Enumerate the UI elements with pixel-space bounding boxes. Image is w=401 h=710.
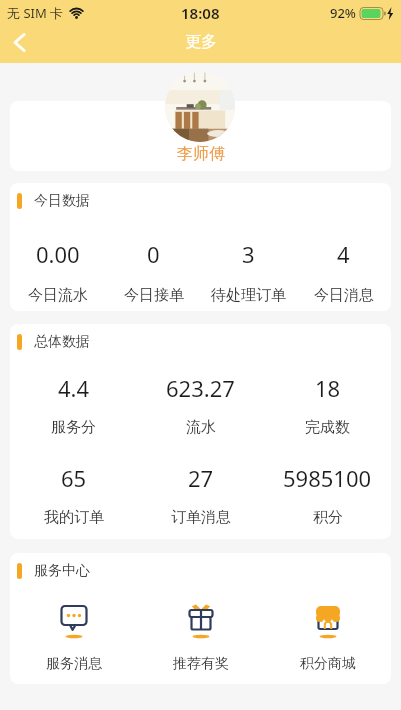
button[interactable]: 623.27 bbox=[137, 373, 264, 437]
staticText: 李师傅 bbox=[177, 144, 225, 164]
staticText: 0 bbox=[147, 239, 160, 269]
button[interactable]: 3 bbox=[201, 239, 296, 305]
staticText: 今日接单 bbox=[124, 286, 184, 305]
button[interactable]: 0.00 bbox=[10, 239, 106, 305]
staticText: 服务分 bbox=[51, 418, 96, 437]
staticText: 今日流水 bbox=[28, 286, 88, 305]
staticText: 4.4 bbox=[58, 373, 90, 403]
staticText: 更多 bbox=[185, 32, 217, 52]
staticText: 完成数 bbox=[305, 418, 350, 437]
button[interactable]: 服务消息 bbox=[10, 605, 137, 673]
staticText: 92% bbox=[330, 4, 356, 22]
staticText: 0.00 bbox=[36, 239, 80, 269]
staticText: 无 SIM 卡 bbox=[7, 4, 64, 22]
button[interactable]: 0 bbox=[106, 239, 201, 305]
button[interactable]: 积分商城 bbox=[264, 605, 391, 673]
staticText: 积分商城 bbox=[300, 655, 356, 673]
staticText: 4 bbox=[337, 239, 350, 269]
button[interactable]: 65 bbox=[10, 463, 137, 527]
staticText: 订单消息 bbox=[171, 508, 231, 527]
staticText: 服务中心 bbox=[34, 562, 90, 580]
button[interactable]: 5985100 bbox=[264, 463, 391, 527]
staticText: 5985100 bbox=[283, 463, 372, 493]
staticText: 65 bbox=[61, 463, 87, 493]
staticText: 总体数据 bbox=[34, 333, 90, 351]
button[interactable]: 李师傅 bbox=[10, 101, 391, 171]
button[interactable]: 推荐有奖 bbox=[137, 605, 264, 673]
staticText: 流水 bbox=[186, 418, 216, 437]
staticText: 我的订单 bbox=[44, 508, 104, 527]
staticText: 3 bbox=[242, 239, 255, 269]
staticText: 623.27 bbox=[166, 373, 235, 403]
staticText: 待处理订单 bbox=[211, 286, 286, 305]
button[interactable]: 4 bbox=[296, 239, 391, 305]
staticText: 今日数据 bbox=[34, 192, 90, 210]
button[interactable]: 27 bbox=[137, 463, 264, 527]
staticText: 今日消息 bbox=[314, 286, 374, 305]
button[interactable]: 4.4 bbox=[10, 373, 137, 437]
staticText: 18 bbox=[315, 373, 341, 403]
button[interactable]: 18 bbox=[264, 373, 391, 437]
staticText: 积分 bbox=[313, 508, 343, 527]
staticText: 服务消息 bbox=[46, 655, 102, 673]
button[interactable] bbox=[4, 27, 34, 57]
staticText: 推荐有奖 bbox=[173, 655, 229, 673]
staticText: 18:08 bbox=[181, 3, 220, 23]
staticText: 27 bbox=[188, 463, 214, 493]
